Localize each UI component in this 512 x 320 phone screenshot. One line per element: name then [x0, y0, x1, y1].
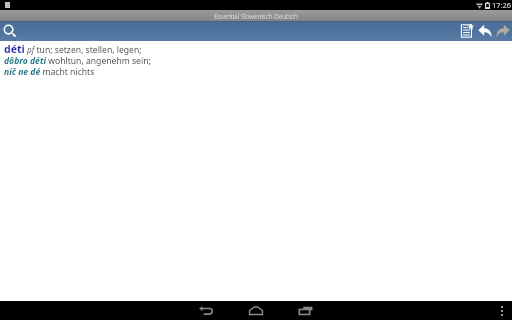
button[interactable]: More options: [492, 301, 512, 320]
button[interactable]: déti pf tun; setzen, stellen, legen; dôb…: [4, 42, 512, 78]
button[interactable]: Recents: [281, 301, 331, 320]
button[interactable]: New note: [458, 22, 476, 40]
button[interactable]: Home: [231, 301, 281, 320]
button[interactable]: Search: [0, 21, 20, 41]
staticText: déti pf tun; setzen, stellen, legen; dôb…: [4, 42, 151, 78]
staticText: 17:26: [492, 0, 511, 10]
button[interactable]: Back: [476, 22, 494, 40]
button[interactable]: Back: [181, 301, 231, 320]
button[interactable]: Forward: [494, 22, 512, 40]
staticText: Essential Slowenisch-Deutsch: [214, 12, 298, 21]
